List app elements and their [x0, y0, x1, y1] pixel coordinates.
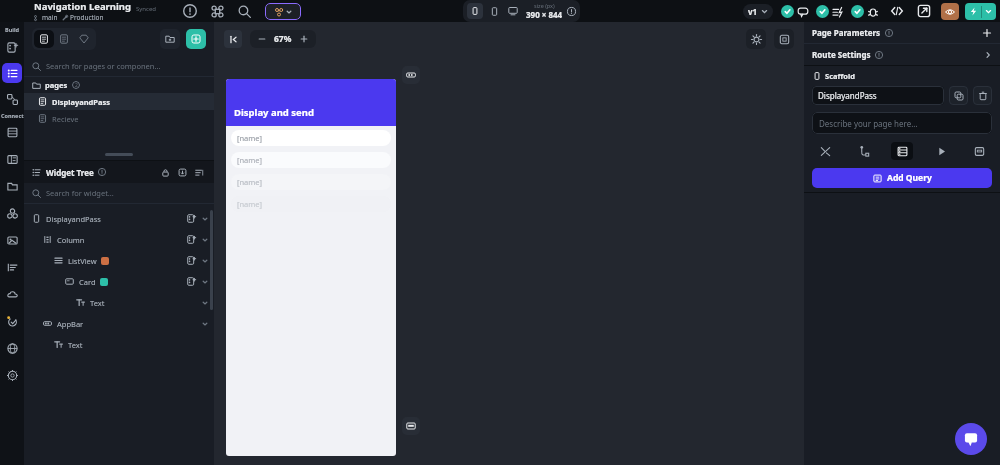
- staticText: [name]: [237, 133, 263, 143]
- button[interactable]: [name]: [231, 196, 391, 212]
- button[interactable]: Create: [2, 37, 22, 57]
- button[interactable]: Users: [2, 203, 22, 223]
- button[interactable]: Zoom out: [256, 33, 268, 45]
- button[interactable]: Page description: [812, 112, 992, 134]
- button[interactable]: [name]: [231, 174, 391, 190]
- button[interactable]: Delete page: [973, 86, 992, 105]
- button[interactable]: DisplayandPass: [38, 93, 214, 110]
- button[interactable]: Help: [181, 2, 199, 20]
- button[interactable]: DisplayandPass: [32, 208, 208, 229]
- button[interactable]: Add child to DisplayandPass: [187, 214, 196, 223]
- button[interactable]: Code: [888, 2, 906, 20]
- staticText: Widget Tree: [46, 167, 94, 178]
- staticText: [name]: [237, 199, 263, 209]
- button[interactable]: Size info: [567, 7, 576, 16]
- button[interactable]: Column: [43, 229, 208, 250]
- button[interactable]: Collapse panel: [224, 30, 242, 48]
- button[interactable]: Backend query: [853, 142, 875, 160]
- button[interactable]: Route Settings: [812, 44, 992, 65]
- staticText: 2: [75, 82, 78, 89]
- staticText: ListView: [68, 256, 97, 266]
- staticText: AppBar: [57, 319, 84, 329]
- button[interactable]: pages: [32, 77, 214, 93]
- button[interactable]: Duplicate page: [949, 86, 968, 105]
- button[interactable]: Bottom bar widget: [402, 417, 420, 435]
- button[interactable]: State: [968, 142, 990, 160]
- button[interactable]: Card: [65, 271, 208, 292]
- button[interactable]: AppBar: [43, 313, 208, 334]
- button[interactable]: Add child to Card: [187, 277, 196, 286]
- staticText: 390 × 844: [526, 9, 563, 20]
- button[interactable]: Issues: [781, 5, 809, 18]
- button[interactable]: Add Query: [812, 168, 992, 188]
- button[interactable]: Animations: [930, 142, 952, 160]
- button[interactable]: Theme: [2, 257, 22, 277]
- staticText: [name]: [237, 177, 263, 187]
- button[interactable]: Command palette: [209, 3, 226, 20]
- button[interactable]: Media: [2, 230, 22, 250]
- button[interactable]: Pages: [2, 63, 22, 83]
- staticText: Text: [68, 340, 83, 350]
- button[interactable]: Add parameter: [982, 28, 992, 38]
- button[interactable]: Search pages: [32, 56, 206, 76]
- button[interactable]: Tree options: [193, 166, 206, 179]
- button[interactable]: Debug: [851, 5, 879, 18]
- button[interactable]: Integrations: [2, 338, 22, 358]
- button[interactable]: Desktop: [505, 3, 521, 19]
- staticText: 67%: [274, 33, 292, 45]
- button[interactable]: Add child to ListView: [187, 256, 196, 265]
- button[interactable]: Share: [915, 2, 933, 20]
- button[interactable]: Components: [54, 30, 74, 48]
- button[interactable]: Text: [76, 292, 208, 313]
- button[interactable]: Open chat support: [955, 423, 987, 455]
- button[interactable]: Brightness: [746, 29, 766, 49]
- button[interactable]: [name]: [231, 130, 391, 146]
- button[interactable]: Collapse all: [176, 166, 189, 179]
- button[interactable]: Database: [2, 122, 22, 142]
- button[interactable]: Tablet: [486, 3, 502, 19]
- button[interactable]: AppBar widget: [402, 66, 420, 84]
- button[interactable]: Lock tree: [159, 166, 172, 179]
- button[interactable]: Pages: [34, 30, 54, 48]
- button[interactable]: Search: [236, 3, 253, 20]
- button[interactable]: Data: [891, 142, 913, 160]
- button[interactable]: Recieve: [38, 110, 214, 127]
- button[interactable]: Run: [816, 5, 844, 18]
- staticText: Synced: [136, 5, 157, 13]
- staticText: Column: [57, 235, 85, 245]
- button[interactable]: Cloud: [2, 284, 22, 304]
- button[interactable]: Zoom in: [298, 33, 310, 45]
- staticText: Text: [90, 298, 105, 308]
- button[interactable]: Page name: [812, 86, 944, 105]
- button[interactable]: Tests: [2, 311, 22, 331]
- button[interactable]: Text: [54, 334, 208, 355]
- button[interactable]: Actions: [814, 142, 836, 160]
- staticText: Production: [70, 13, 104, 22]
- button[interactable]: Fit to screen: [774, 29, 794, 49]
- button[interactable]: [name]: [231, 152, 391, 168]
- staticText: Display and send: [234, 106, 314, 119]
- button[interactable]: Preview: [941, 3, 959, 20]
- button[interactable]: Search widget: [32, 183, 206, 203]
- button[interactable]: New page: [186, 29, 206, 49]
- button[interactable]: ListView: [54, 250, 208, 271]
- button[interactable]: Theme selector: [265, 3, 301, 20]
- staticText: Build: [5, 26, 19, 33]
- staticText: Describe your page here...: [819, 118, 918, 129]
- button[interactable]: Test mode: [965, 3, 996, 20]
- staticText: DisplayandPass: [52, 97, 111, 107]
- button[interactable]: Components: [2, 89, 22, 109]
- button[interactable]: Assets: [74, 30, 94, 48]
- staticText: DisplayandPass: [46, 214, 101, 224]
- button[interactable]: Settings: [2, 365, 22, 385]
- staticText: Recieve: [52, 114, 79, 124]
- button[interactable]: Phone: [467, 3, 483, 19]
- button[interactable]: Collections: [2, 149, 22, 169]
- button[interactable]: New folder: [160, 29, 180, 49]
- staticText: Search for pages or componen...: [46, 61, 161, 71]
- staticText: Card: [79, 277, 96, 287]
- button[interactable]: Page Parameters: [812, 22, 992, 43]
- staticText: Scaffold: [825, 71, 855, 81]
- button[interactable]: Add child to Column: [187, 235, 196, 244]
- button[interactable]: Storage: [2, 176, 22, 196]
